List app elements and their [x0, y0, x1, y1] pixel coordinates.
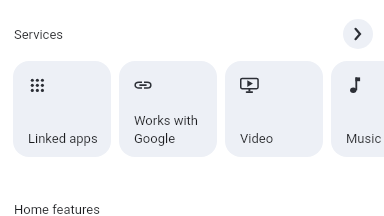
staticText: Works with Google	[134, 113, 199, 146]
button[interactable]: Linked apps	[13, 61, 111, 157]
staticText: Services	[14, 27, 63, 42]
staticText: Music	[346, 131, 382, 146]
button[interactable]: Video	[225, 61, 323, 157]
staticText: Video	[240, 131, 274, 146]
button[interactable]: Music	[331, 61, 384, 157]
staticText: Home features	[14, 202, 100, 216]
button[interactable]: See all services	[343, 19, 373, 49]
button[interactable]: Works with Google	[119, 61, 217, 157]
staticText: Linked apps	[28, 131, 98, 146]
